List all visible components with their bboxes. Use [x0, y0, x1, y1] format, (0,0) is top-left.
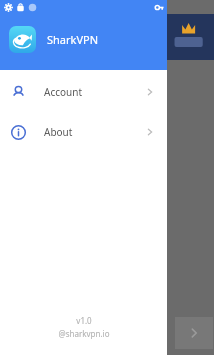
button[interactable]: Account: [0, 78, 167, 106]
staticText: Account: [44, 85, 83, 99]
button[interactable]: About: [0, 118, 167, 146]
staticText: SharkVPN: [47, 32, 99, 47]
staticText: @sharkvpn.io: [58, 328, 110, 339]
staticText: v1.0: [76, 315, 92, 326]
button[interactable]: Next: [175, 317, 213, 349]
staticText: About: [44, 125, 73, 139]
button[interactable]: SharkVPN: [0, 22, 167, 56]
